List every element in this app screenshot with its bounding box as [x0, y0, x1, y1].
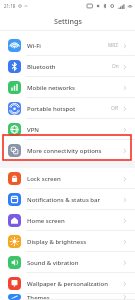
staticText: Settings — [54, 16, 82, 26]
staticText: Sound & vibration — [27, 259, 122, 267]
staticText: VPN — [27, 126, 122, 134]
button[interactable]: Home screen — [0, 210, 135, 231]
button[interactable]: Notifications & status bar — [0, 189, 135, 210]
staticText: Lock screen — [27, 175, 122, 183]
button[interactable]: Wallpaper & personalization — [0, 273, 135, 294]
staticText: Wi-Fi — [27, 42, 108, 50]
button[interactable]: Mobile networks — [0, 77, 135, 98]
staticText: Bluetooth — [27, 63, 112, 71]
staticText: MRZ — [108, 42, 119, 49]
staticText: Portable hotspot — [27, 105, 111, 113]
staticText: More connectivity options — [27, 147, 122, 155]
button[interactable]: Wi-Fi — [0, 35, 135, 56]
staticText: Wallpaper & personalization — [27, 280, 122, 288]
staticText: Mobile networks — [27, 84, 122, 92]
staticText: 21:18 — [4, 3, 16, 9]
button[interactable]: Display & brightness — [0, 231, 135, 252]
button[interactable]: More connectivity options — [0, 140, 135, 161]
button[interactable]: Sound & vibration — [0, 252, 135, 273]
staticText: Notifications & status bar — [27, 196, 122, 204]
staticText: Off — [111, 105, 119, 112]
button[interactable]: VPN — [0, 119, 135, 140]
button[interactable]: Portable hotspot — [0, 98, 135, 119]
staticText: Display & brightness — [27, 238, 122, 246]
staticText: Themes — [27, 294, 122, 300]
button[interactable]: Bluetooth — [0, 56, 135, 77]
button[interactable]: Themes — [0, 294, 135, 300]
staticText: Home screen — [27, 217, 122, 225]
staticText: On — [112, 63, 119, 70]
button[interactable]: Lock screen — [0, 168, 135, 189]
